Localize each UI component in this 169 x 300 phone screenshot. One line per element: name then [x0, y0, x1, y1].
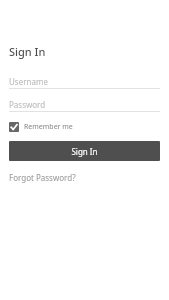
- staticText: Remember me: [24, 122, 73, 132]
- button[interactable]: Forgot Password?: [9, 172, 76, 183]
- staticText: Sign In: [9, 44, 46, 59]
- staticText: Username: [9, 76, 48, 87]
- button[interactable]: Password: [9, 98, 160, 112]
- button[interactable]: Sign In: [9, 141, 160, 161]
- button[interactable]: Username: [9, 75, 160, 89]
- staticText: Forgot Password?: [9, 172, 76, 183]
- button[interactable]: Remember me: [9, 121, 73, 133]
- staticText: Password: [9, 99, 46, 110]
- staticText: Sign In: [71, 146, 98, 157]
